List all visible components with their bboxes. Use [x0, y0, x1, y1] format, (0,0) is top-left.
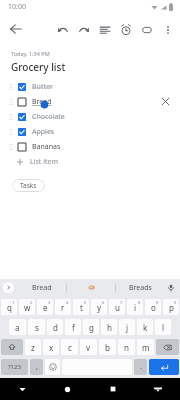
button[interactable]: b [99, 339, 116, 355]
button[interactable]: n [118, 339, 135, 355]
button[interactable]: Apples [0, 124, 180, 139]
button[interactable]: g [83, 319, 99, 335]
button[interactable]: s [28, 319, 45, 335]
staticText: o [151, 302, 156, 313]
button[interactable]: w [19, 299, 35, 315]
button[interactable]: Backspace [156, 339, 179, 355]
staticText: b [105, 342, 110, 353]
button[interactable]: More options [157, 19, 178, 40]
button[interactable]: l [155, 319, 171, 335]
button[interactable]: Switch keyboard [135, 378, 180, 400]
button[interactable]: Tasks [12, 179, 45, 192]
staticText: k [143, 322, 148, 333]
button[interactable]: Redo [73, 19, 94, 40]
button[interactable]: Enter [149, 359, 179, 375]
staticText: 10:00 [8, 2, 26, 12]
button[interactable]: o [145, 299, 161, 315]
button[interactable]: Breads [116, 279, 164, 296]
staticText: m [142, 342, 150, 353]
staticText: , [36, 362, 38, 372]
button[interactable]: c [61, 339, 78, 355]
staticText: x [49, 342, 54, 353]
button[interactable]: Emoji [45, 359, 60, 375]
staticText: j [126, 322, 129, 333]
staticText: 0 [174, 300, 177, 305]
button[interactable]: m [137, 339, 154, 355]
button[interactable]: i [127, 299, 143, 315]
button[interactable]: Formatting [94, 19, 115, 40]
button[interactable]: Chocolate [0, 109, 180, 124]
button[interactable]: a [9, 319, 26, 335]
button[interactable]: Butter [0, 79, 180, 94]
staticText: e [43, 302, 48, 313]
button[interactable]: k [137, 319, 153, 335]
button[interactable]: q [1, 299, 17, 315]
staticText: w [24, 302, 31, 313]
staticText: f [72, 322, 75, 333]
button[interactable]: More suggestions [3, 282, 14, 293]
button[interactable]: Recent apps [90, 378, 135, 400]
button[interactable]: . [134, 359, 147, 375]
staticText: y [97, 302, 102, 313]
staticText: 6 [102, 300, 105, 305]
staticText: 5 [84, 300, 87, 305]
button[interactable]: Bread [0, 94, 180, 109]
button[interactable]: Back [4, 17, 28, 41]
staticText: r [61, 302, 65, 313]
staticText: h [107, 322, 112, 333]
button[interactable]: r [55, 299, 71, 315]
staticText: g [89, 322, 94, 333]
button[interactable]: List item [0, 154, 180, 169]
staticText: Butter [32, 82, 53, 92]
button[interactable]: h [101, 319, 117, 335]
button[interactable]: Shift [1, 339, 23, 355]
staticText: . [140, 362, 142, 372]
button[interactable]: Bananas [0, 139, 180, 154]
button[interactable]: v [80, 339, 97, 355]
button[interactable]: ?123 [1, 359, 28, 375]
staticText: Bread [32, 97, 52, 107]
button[interactable]: Reminder [115, 19, 136, 40]
button[interactable]: f [65, 319, 81, 335]
button[interactable]: y [91, 299, 107, 315]
staticText: i [134, 302, 137, 313]
staticText: Bananas [32, 142, 61, 152]
button[interactable]: Delete item [159, 95, 172, 108]
button[interactable] [67, 279, 115, 296]
button[interactable]: p [163, 299, 179, 315]
button[interactable]: Home [45, 378, 90, 400]
button[interactable]: z [25, 339, 41, 355]
button[interactable]: Voice input [165, 282, 177, 294]
staticText: t [80, 302, 83, 313]
button[interactable]: d [47, 319, 63, 335]
staticText: ?123 [8, 363, 21, 371]
button[interactable]: Undo [52, 19, 73, 40]
button[interactable]: j [119, 319, 135, 335]
staticText: a [15, 322, 20, 333]
staticText: n [124, 342, 129, 353]
staticText: v [86, 342, 91, 353]
staticText: Breads [129, 283, 152, 293]
staticText: s [35, 322, 39, 333]
staticText: Grocery list [11, 60, 66, 74]
staticText: Bread [32, 283, 52, 293]
button[interactable]: u [109, 299, 125, 315]
staticText: p [169, 302, 174, 313]
staticText: u [115, 302, 120, 313]
staticText: d [53, 322, 58, 333]
staticText: 2 [30, 300, 33, 305]
staticText: q [7, 302, 12, 313]
staticText: 3 [48, 300, 51, 305]
button[interactable]: Hide keyboard [0, 378, 45, 400]
button[interactable]: e [37, 299, 53, 315]
staticText: Today, 1:34 PM [11, 50, 50, 57]
button[interactable]: x [43, 339, 59, 355]
button[interactable]: Collaborator [136, 19, 157, 40]
staticText: Apples [32, 127, 55, 137]
button[interactable]: , [30, 359, 43, 375]
staticText: Tasks [20, 181, 37, 190]
button[interactable]: Bread [18, 279, 66, 296]
staticText: Chocolate [32, 112, 65, 122]
button[interactable]: t [73, 299, 89, 315]
